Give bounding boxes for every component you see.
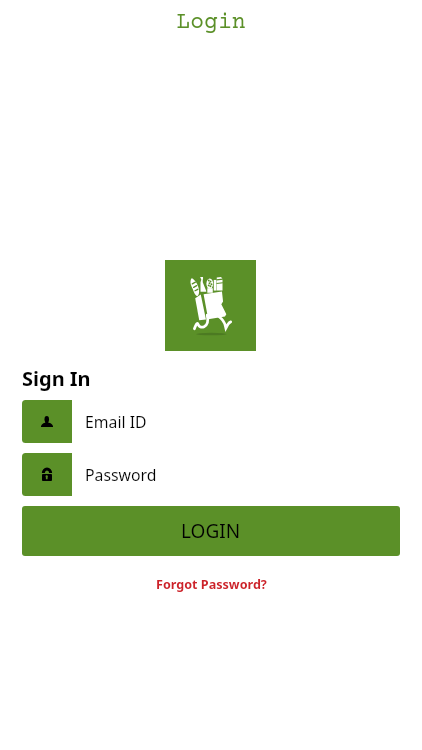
staticText: Password (85, 464, 157, 486)
button[interactable]: LOGIN (22, 506, 400, 556)
button[interactable]: Forgot Password? (152, 572, 271, 597)
staticText: LOGIN (181, 518, 241, 544)
button[interactable]: Email ID (22, 400, 422, 443)
staticText: Login (0, 10, 422, 36)
button[interactable]: Password (22, 453, 422, 496)
staticText: Sign In (22, 365, 91, 392)
staticText: Email ID (85, 411, 147, 433)
